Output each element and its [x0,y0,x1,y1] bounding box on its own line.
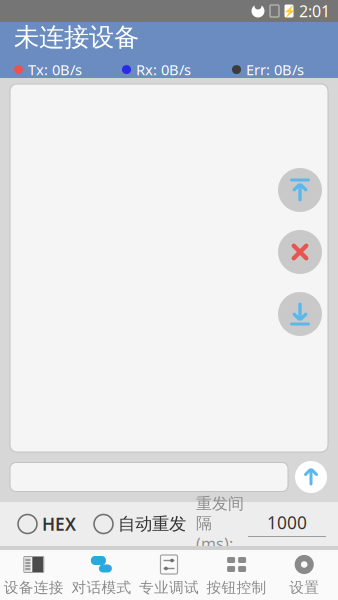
staticText: 重发间隔(ms): [196,494,244,554]
button[interactable]: HEX [18,512,76,535]
staticText: 1000 [267,511,307,534]
button[interactable]: 自动重发 [94,513,186,535]
button[interactable]: Send [294,460,328,494]
staticText: Rx: 0B/s [136,60,191,79]
staticText: 未连接设备 [14,22,139,53]
staticText: ⚡ [282,5,295,17]
staticText: Tx: 0B/s [28,60,82,79]
button[interactable]: 专业调试 [135,550,203,600]
staticText: 专业调试 [139,578,199,596]
staticText: 对话模式 [71,578,131,596]
staticText: 2:01 [299,0,330,22]
staticText: 按钮控制 [207,578,267,596]
button[interactable]: 设备连接 [0,550,68,600]
staticText: 设备连接 [4,578,64,596]
staticText: 设置 [289,578,319,596]
button[interactable]: 按钮控制 [203,550,270,600]
staticText: HEX [42,512,76,535]
staticText: Err: 0B/s [246,60,304,79]
button[interactable]: 对话模式 [68,550,135,600]
staticText: 自动重发 [118,513,186,535]
button[interactable]: Scroll to top [278,168,322,212]
button[interactable]: 设置 [270,550,338,600]
button[interactable]: Clear [278,230,322,274]
button[interactable]: Scroll to bottom [278,292,322,336]
